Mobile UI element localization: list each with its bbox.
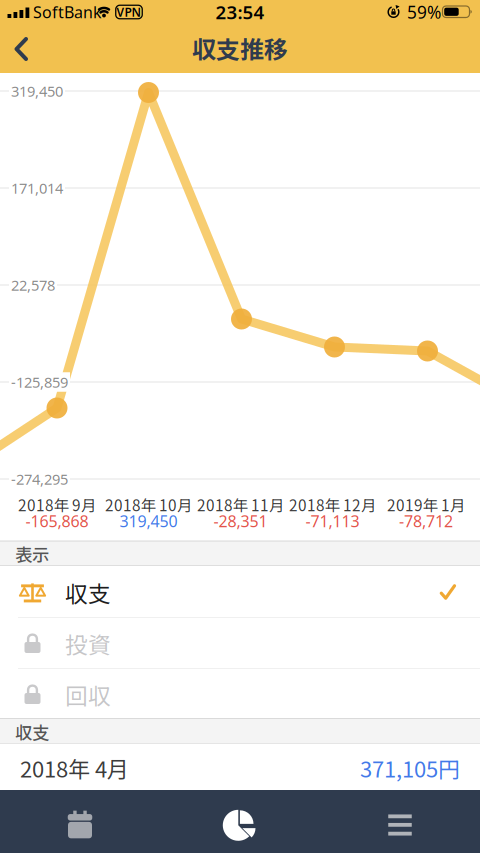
button[interactable]: 2018年 4月 bbox=[0, 744, 480, 790]
staticText: 23:54 bbox=[215, 0, 264, 24]
staticText: 22,578 bbox=[11, 275, 55, 295]
staticText: 2018年 4月 bbox=[20, 752, 129, 784]
staticText: 2018年 9月 bbox=[18, 493, 96, 516]
button[interactable]: 投資 bbox=[0, 618, 480, 669]
staticText: VPN bbox=[116, 4, 141, 20]
staticText: 2018年 11月 bbox=[197, 493, 284, 516]
staticText: 2018年 12月 bbox=[289, 493, 376, 516]
staticText: 投資 bbox=[65, 627, 111, 660]
staticText: -165,868 bbox=[25, 510, 88, 532]
staticText: 回収 bbox=[65, 678, 111, 711]
staticText: 収支推移 bbox=[192, 31, 288, 65]
button[interactable]: 回収 bbox=[0, 669, 480, 718]
staticText: SoftBank bbox=[33, 1, 102, 23]
button[interactable]: Back bbox=[0, 29, 43, 69]
button[interactable]: Calendar bbox=[0, 790, 160, 853]
staticText: 2018年 10月 bbox=[105, 493, 192, 516]
staticText: -125,859 bbox=[11, 372, 68, 392]
staticText: -78,712 bbox=[399, 510, 453, 532]
staticText: -274,295 bbox=[11, 469, 68, 489]
staticText: 収支 bbox=[65, 576, 111, 609]
button[interactable]: 収支 bbox=[0, 566, 480, 618]
staticText: 371,105円 bbox=[360, 752, 460, 784]
staticText: 2019年 1月 bbox=[387, 493, 465, 516]
button[interactable]: Charts bbox=[160, 790, 320, 853]
staticText: 171,014 bbox=[11, 178, 63, 198]
button[interactable]: Menu bbox=[320, 790, 480, 853]
staticText: 319,450 bbox=[11, 81, 63, 101]
staticText: 59% bbox=[407, 0, 441, 23]
staticText: -71,113 bbox=[305, 510, 359, 532]
staticText: -28,351 bbox=[213, 510, 267, 532]
staticText: 収支 bbox=[15, 719, 49, 745]
staticText: 319,450 bbox=[119, 510, 177, 532]
staticText: 表示 bbox=[15, 541, 49, 567]
